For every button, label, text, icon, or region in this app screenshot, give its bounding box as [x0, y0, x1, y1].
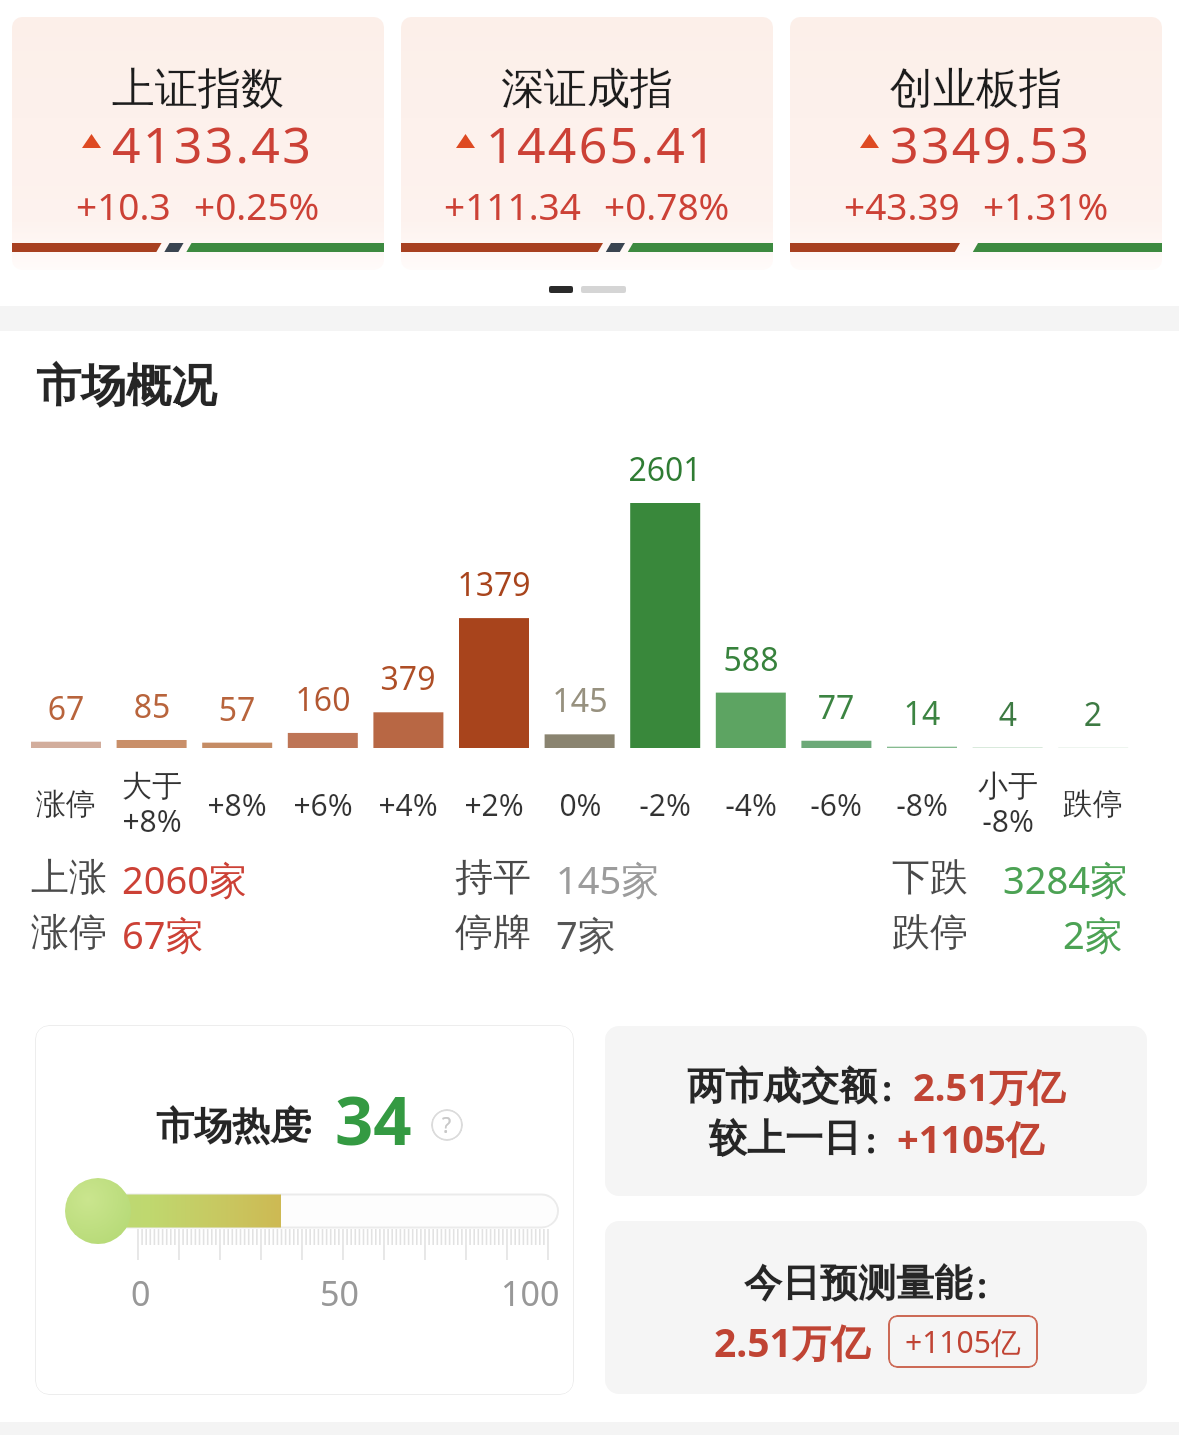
staticText: 2.51万亿: [714, 1315, 870, 1368]
staticText: 145: [525, 678, 635, 722]
staticText: 停牌: [455, 908, 531, 956]
staticText: 100: [501, 1270, 560, 1316]
staticText: 涨停: [31, 908, 107, 956]
staticText: 379: [353, 656, 463, 700]
staticText: +0.25%: [194, 180, 320, 230]
staticText: 588: [696, 637, 806, 681]
staticText: 深证成指: [501, 62, 673, 116]
staticText: +0.78%: [604, 180, 730, 230]
staticText: 跌停: [892, 908, 968, 956]
staticText: -6%: [810, 784, 862, 825]
staticText: 市场热度: [156, 1102, 308, 1150]
staticText: 7家: [556, 908, 616, 960]
staticText: -4%: [725, 784, 777, 825]
staticText: 85: [97, 684, 207, 728]
staticText: 50: [320, 1270, 359, 1316]
staticText: -8%: [896, 784, 948, 825]
staticText: 3349.53: [890, 110, 1092, 178]
staticText: -2%: [639, 784, 691, 825]
staticText: 57: [182, 687, 292, 731]
staticText: 持平: [455, 853, 531, 901]
staticText: 2家: [1063, 908, 1123, 960]
staticText: +6%: [293, 784, 353, 825]
staticText: 0%: [559, 784, 602, 825]
staticText: 0: [131, 1270, 151, 1316]
staticText: +43.39: [844, 180, 960, 230]
staticText: 跌停: [1063, 785, 1123, 823]
staticText: +1.31%: [983, 180, 1109, 230]
staticText: 160: [268, 677, 378, 721]
staticText: 上涨: [31, 853, 107, 901]
staticText: 大于 +8%: [122, 767, 182, 841]
staticText: 77: [781, 685, 891, 729]
staticText: 市场概况: [36, 358, 216, 415]
staticText: 2: [1038, 692, 1148, 736]
staticText: 今日预测量能: [744, 1259, 972, 1307]
staticText: 2060家: [122, 853, 247, 905]
staticText: 创业板指: [890, 62, 1062, 116]
staticText: +2%: [464, 784, 524, 825]
staticText: 34: [335, 1073, 412, 1164]
staticText: 1379: [439, 562, 549, 606]
button[interactable]: 创业板指: [790, 17, 1162, 270]
staticText: +111.34: [444, 180, 581, 230]
staticText: 14: [867, 691, 977, 735]
staticText: 2.51万亿: [913, 1060, 1065, 1112]
button[interactable]: 上证指数: [12, 17, 384, 270]
button[interactable]: 深证成指: [401, 17, 773, 270]
staticText: 下跌: [892, 853, 968, 901]
staticText: 3284家: [1003, 853, 1128, 905]
button[interactable]: 市场热度说明: [431, 1109, 463, 1141]
staticText: +1105亿: [905, 1321, 1021, 1362]
staticText: +1105亿: [897, 1112, 1044, 1164]
staticText: +8%: [207, 784, 267, 825]
staticText: 14465.41: [486, 110, 718, 178]
staticText: 2601: [610, 447, 720, 491]
staticText: 67家: [122, 908, 204, 960]
staticText: ?: [442, 1111, 452, 1140]
staticText: 4133.43: [112, 110, 314, 178]
staticText: +4%: [378, 784, 438, 825]
button[interactable]: 市场热度: [35, 1025, 574, 1395]
button[interactable]: 今日预测量能: [605, 1221, 1147, 1394]
staticText: 67: [11, 686, 121, 730]
staticText: 145家: [556, 853, 660, 905]
staticText: 涨停: [36, 785, 96, 823]
staticText: 较上一日: [709, 1114, 861, 1162]
staticText: 小于 -8%: [978, 767, 1038, 841]
staticText: +10.3: [76, 180, 171, 230]
button[interactable]: 两市成交额: [605, 1026, 1147, 1196]
staticText: 4: [953, 692, 1063, 736]
staticText: 上证指数: [112, 62, 284, 116]
staticText: 两市成交额: [687, 1062, 877, 1110]
